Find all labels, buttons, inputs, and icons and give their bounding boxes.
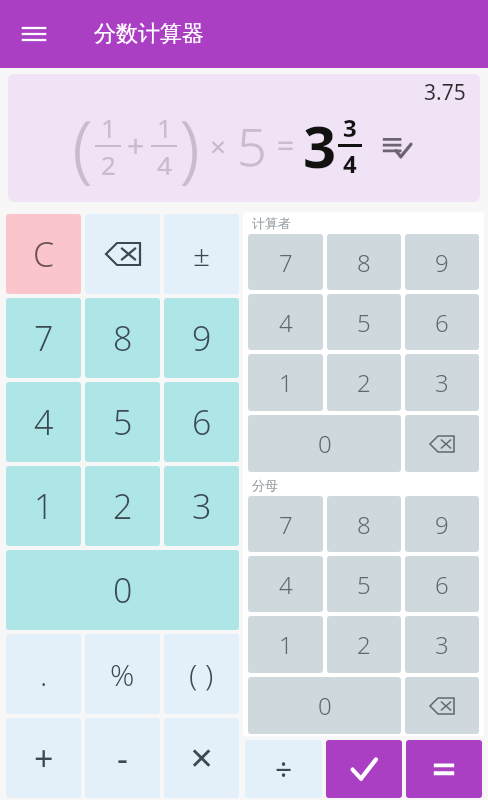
button[interactable]: Menu xyxy=(10,10,58,58)
button[interactable]: 2 xyxy=(85,466,160,546)
button[interactable]: 8 xyxy=(85,298,160,378)
staticText: ( xyxy=(72,95,93,196)
staticText: 4 xyxy=(343,147,357,180)
staticText: 分数计算器 xyxy=(94,20,204,48)
staticText: 6 xyxy=(435,306,449,339)
staticText: + xyxy=(34,735,54,781)
button[interactable]: 5 xyxy=(327,556,401,612)
button[interactable]: 1 xyxy=(248,354,323,411)
button[interactable]: 3 xyxy=(405,616,479,673)
staticText: 3 xyxy=(435,366,449,399)
staticText: 1 xyxy=(157,110,172,145)
staticText: % xyxy=(110,654,135,695)
staticText: ✕ xyxy=(189,741,215,776)
button[interactable]: 5 xyxy=(85,382,160,462)
button[interactable]: 6 xyxy=(405,556,479,612)
button[interactable]: ✕ xyxy=(164,718,239,798)
button[interactable]: 0 xyxy=(248,415,401,472)
staticText: = xyxy=(277,125,295,166)
staticText: 0 xyxy=(318,427,332,460)
staticText: 3 xyxy=(343,111,357,144)
staticText: 3 xyxy=(192,483,212,529)
staticText: 3 xyxy=(303,106,337,185)
staticText: ) xyxy=(179,95,200,196)
staticText: 7 xyxy=(279,508,293,541)
button[interactable]: 4 xyxy=(248,294,323,350)
button[interactable]: % xyxy=(85,634,160,714)
staticText: 9 xyxy=(435,508,449,541)
button[interactable]: 1 xyxy=(6,466,81,546)
staticText: 9 xyxy=(192,315,212,361)
button[interactable]: 3 xyxy=(164,466,239,546)
button[interactable]: 4 xyxy=(6,382,81,462)
button[interactable]: . xyxy=(6,634,81,714)
staticText: 5 xyxy=(113,399,133,445)
staticText: 1 xyxy=(279,366,293,399)
staticText: - xyxy=(117,735,128,781)
staticText: 5 xyxy=(357,568,371,601)
staticText: 4 xyxy=(279,306,293,339)
button[interactable]: 8 xyxy=(327,234,401,290)
button[interactable]: Equals xyxy=(406,740,482,798)
button[interactable]: Backspace xyxy=(85,214,160,294)
button[interactable]: C xyxy=(6,214,81,294)
staticText: 8 xyxy=(357,508,371,541)
button[interactable]: 1 xyxy=(248,616,323,673)
staticText: 4 xyxy=(157,147,172,182)
button[interactable]: Backspace xyxy=(405,677,479,734)
button[interactable]: ± xyxy=(164,214,239,294)
staticText: 0 xyxy=(113,567,133,613)
button[interactable]: 6 xyxy=(405,294,479,350)
button[interactable]: 0 xyxy=(6,550,239,630)
staticText: 1 xyxy=(279,628,293,661)
staticText: 4 xyxy=(34,399,54,445)
staticText: 3 xyxy=(435,628,449,661)
staticText: C xyxy=(33,231,55,277)
staticText: 2 xyxy=(101,147,116,182)
button[interactable]: + xyxy=(6,718,81,798)
button[interactable]: - xyxy=(85,718,160,798)
button[interactable]: 7 xyxy=(248,496,323,552)
staticText: × xyxy=(210,127,227,165)
staticText: 9 xyxy=(435,246,449,279)
button[interactable]: 9 xyxy=(405,496,479,552)
button[interactable]: 9 xyxy=(164,298,239,378)
staticText: 7 xyxy=(34,315,54,361)
staticText: . xyxy=(40,654,48,695)
staticText: 3.75 xyxy=(424,78,466,107)
staticText: 分母 xyxy=(252,477,278,493)
button[interactable]: 4 xyxy=(248,556,323,612)
staticText: 2 xyxy=(357,628,371,661)
button[interactable]: ( ) xyxy=(164,634,239,714)
button[interactable]: History xyxy=(376,126,416,166)
staticText: ( ) xyxy=(189,654,214,695)
staticText: 8 xyxy=(357,246,371,279)
button[interactable]: 3 xyxy=(405,354,479,411)
button[interactable]: 5 xyxy=(327,294,401,350)
button[interactable]: 2 xyxy=(327,354,401,411)
button[interactable]: Backspace xyxy=(405,415,479,472)
button[interactable]: 8 xyxy=(327,496,401,552)
button[interactable]: 7 xyxy=(248,234,323,290)
staticText: 计算者 xyxy=(252,215,291,231)
staticText: 5 xyxy=(237,110,267,181)
button[interactable]: 0 xyxy=(248,677,401,734)
staticText: 2 xyxy=(113,483,133,529)
button[interactable]: ÷ xyxy=(245,740,322,798)
staticText: 7 xyxy=(279,246,293,279)
staticText: 1 xyxy=(34,483,54,529)
staticText: ÷ xyxy=(275,749,293,790)
button[interactable]: 7 xyxy=(6,298,81,378)
button[interactable]: 3.75 xyxy=(8,74,480,202)
button[interactable]: 2 xyxy=(327,616,401,673)
staticText: 5 xyxy=(357,306,371,339)
staticText: ± xyxy=(193,234,211,275)
staticText: 0 xyxy=(318,689,332,722)
staticText: 6 xyxy=(192,399,212,445)
staticText: 4 xyxy=(279,568,293,601)
staticText: 8 xyxy=(113,315,133,361)
button[interactable]: 9 xyxy=(405,234,479,290)
button[interactable]: 6 xyxy=(164,382,239,462)
button[interactable]: Confirm xyxy=(326,740,402,798)
staticText: 1 xyxy=(101,110,116,145)
